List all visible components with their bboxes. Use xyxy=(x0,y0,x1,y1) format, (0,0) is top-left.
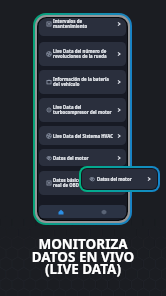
button[interactable]: Intervalos de mantenimiento xyxy=(39,18,126,36)
button[interactable]: Home xyxy=(39,205,82,218)
button[interactable]: Datos básicos en tiempo real de OBD xyxy=(39,171,126,195)
staticText: MONITORIZA DATOS EN VIVO (LIVE DATA) xyxy=(0,235,166,278)
button[interactable]: Live Data del Sistema HVAC xyxy=(39,126,126,145)
button[interactable]: Live Data del número de revoluciones de … xyxy=(39,42,126,66)
staticText: Intervalos de mantenimiento xyxy=(53,18,116,30)
staticText: Datos del motor xyxy=(97,176,146,182)
staticText: Datos del motor xyxy=(53,155,116,161)
staticText: Live Data del Sistema HVAC xyxy=(53,133,116,139)
button[interactable]: Live Data del turbocompresor del motor xyxy=(39,98,126,122)
button[interactable]: Información de la batería del vehículo xyxy=(39,70,126,94)
staticText: Live Data del turbocompresor del motor xyxy=(53,104,116,116)
staticText: Live Data del número de revoluciones de … xyxy=(53,48,116,60)
button[interactable]: Settings xyxy=(82,205,126,218)
staticText: Datos básicos en tiempo real de OBD xyxy=(53,177,116,189)
button[interactable]: Datos del motor xyxy=(39,149,126,166)
button[interactable]: Datos del motor xyxy=(82,169,157,189)
staticText: Información de la batería del vehículo xyxy=(53,76,116,88)
